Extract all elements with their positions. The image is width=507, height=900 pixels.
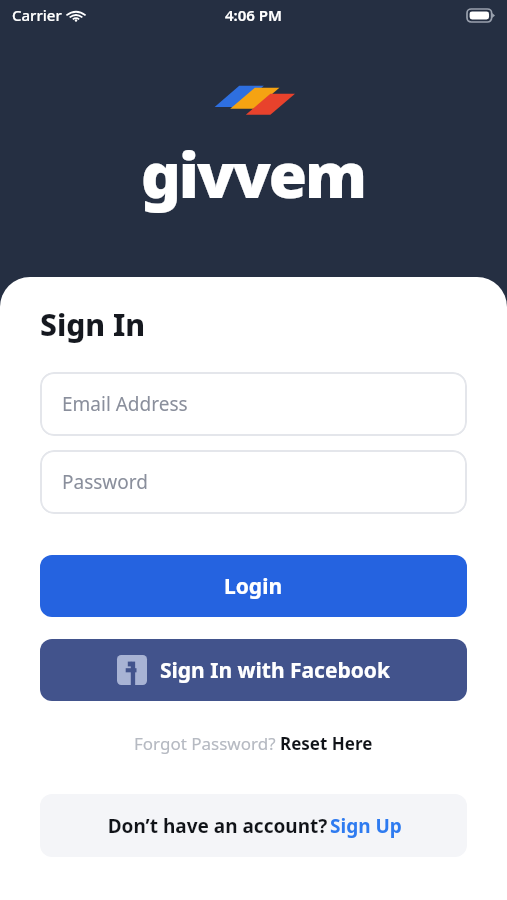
- staticText: Forgot Password?: [134, 732, 280, 755]
- button[interactable]: Email Address: [40, 372, 467, 436]
- staticText: Don’t have an account?: [105, 813, 330, 839]
- staticText: Email Address: [62, 391, 188, 417]
- button[interactable]: Forgot Password?: [40, 732, 467, 755]
- staticText: Sign Up: [330, 813, 402, 839]
- staticText: givvem: [141, 132, 366, 216]
- button[interactable]: Sign In with Facebook: [40, 639, 467, 701]
- staticText: Login: [224, 572, 283, 601]
- staticText: Carrier: [12, 5, 62, 25]
- staticText: Sign In: [40, 304, 146, 345]
- button[interactable]: Login: [40, 555, 467, 617]
- staticText: Reset Here: [280, 732, 373, 755]
- button[interactable]: Don’t have an account?: [40, 794, 467, 857]
- staticText: Password: [62, 469, 148, 495]
- button[interactable]: Password: [40, 450, 467, 514]
- staticText: 4:06 PM: [225, 5, 282, 25]
- staticText: Sign In with Facebook: [160, 656, 391, 685]
